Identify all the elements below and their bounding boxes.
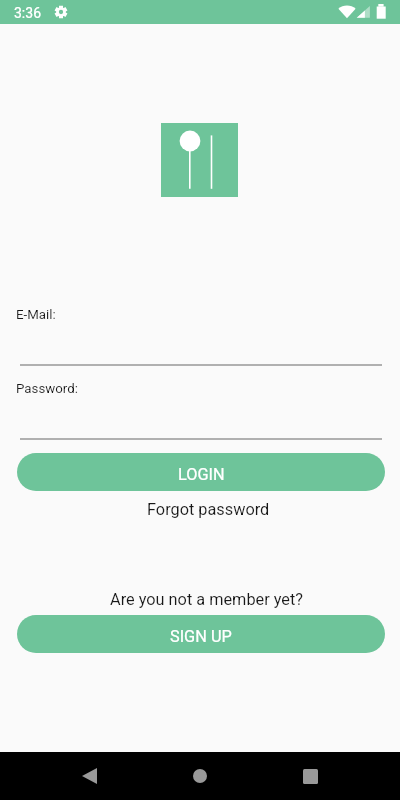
staticText: SIGN UP	[170, 627, 232, 646]
button[interactable]: Recent apps	[286, 752, 334, 800]
staticText: E-Mail:	[16, 307, 56, 323]
staticText: LOGIN	[178, 465, 225, 484]
button[interactable]: LOGIN	[17, 453, 385, 491]
button[interactable]: Home	[176, 752, 224, 800]
staticText: Password:	[16, 381, 78, 397]
staticText: Forgot password	[147, 500, 270, 519]
button[interactable]: Back	[65, 752, 113, 800]
button[interactable]: SIGN UP	[17, 615, 385, 653]
staticText: 3:36	[14, 5, 41, 21]
button[interactable]: Forgot password	[0, 498, 400, 520]
staticText: Are you not a member yet?	[110, 590, 304, 609]
